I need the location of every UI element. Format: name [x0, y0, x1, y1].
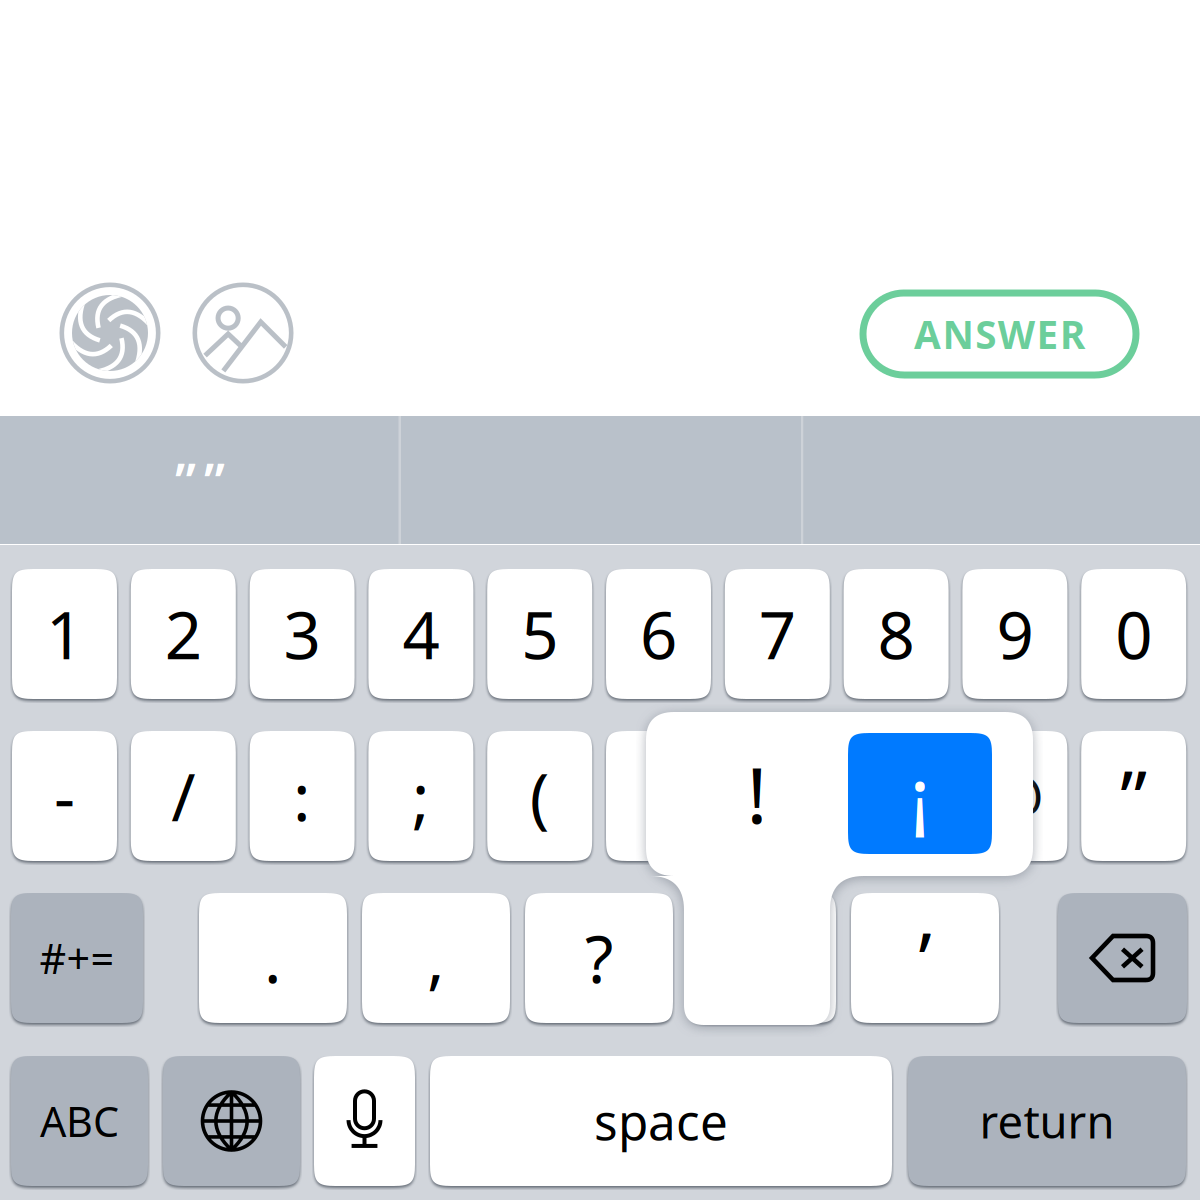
button[interactable]: 5: [487, 569, 592, 699]
button[interactable]: ’: [851, 893, 999, 1023]
staticText: ANSWER: [914, 308, 1085, 360]
staticText: #+=: [39, 931, 114, 985]
staticText: 9: [996, 591, 1033, 677]
button[interactable]: return: [908, 1056, 1186, 1186]
button[interactable]: .: [199, 893, 347, 1023]
button[interactable]: Next keyboard: [163, 1056, 300, 1186]
button[interactable]: 4: [368, 569, 473, 699]
staticText: (: [530, 753, 550, 839]
button[interactable]: ABC: [11, 1056, 148, 1186]
staticText: 8: [878, 591, 915, 677]
button[interactable]: @: [962, 731, 1067, 861]
button[interactable]: 0: [1081, 569, 1186, 699]
staticText: ¡: [909, 742, 930, 845]
button[interactable]: ”: [1081, 731, 1186, 861]
button[interactable]: Photo library: [185, 275, 301, 391]
button[interactable]: ” ”: [0, 416, 400, 544]
staticText: ,: [427, 915, 445, 1001]
button[interactable]: ?: [525, 893, 673, 1023]
button[interactable]: 8: [844, 569, 949, 699]
staticText: $: [759, 753, 796, 839]
button[interactable]: Camera: [52, 275, 168, 391]
button[interactable]: !: [685, 733, 829, 854]
staticText: ?: [585, 915, 613, 1001]
button[interactable]: 9: [962, 569, 1067, 699]
staticText: -: [54, 753, 75, 839]
staticText: 5: [521, 591, 558, 677]
staticText: :: [293, 753, 311, 839]
button[interactable]: (: [487, 731, 592, 861]
staticText: ’: [918, 908, 931, 1008]
button[interactable]: #+=: [11, 893, 143, 1023]
staticText: ;: [412, 753, 430, 839]
staticText: &: [872, 753, 920, 839]
button[interactable]: :: [250, 731, 355, 861]
staticText: ” ”: [175, 446, 225, 514]
button[interactable]: ¡: [848, 733, 992, 854]
staticText: 6: [640, 591, 677, 677]
button[interactable]: 6: [606, 569, 711, 699]
staticText: space: [594, 1088, 728, 1154]
button[interactable]: /: [131, 731, 236, 861]
staticText: 7: [759, 591, 796, 677]
button[interactable]: ;: [368, 731, 473, 861]
button[interactable]: 2: [131, 569, 236, 699]
button[interactable]: 1: [12, 569, 117, 699]
staticText: 4: [402, 591, 439, 677]
staticText: @: [985, 753, 1044, 839]
button[interactable]: !: [688, 893, 836, 1023]
staticText: /: [171, 753, 195, 839]
staticText: 0: [1115, 591, 1152, 677]
button[interactable]: Dictation: [314, 1056, 415, 1186]
button[interactable]: -: [12, 731, 117, 861]
button[interactable]: ANSWER: [863, 293, 1136, 375]
button[interactable]: ): [606, 731, 711, 861]
staticText: 1: [46, 591, 83, 677]
button[interactable]: space: [430, 1056, 892, 1186]
button[interactable]: &: [844, 731, 949, 861]
button[interactable]: 7: [725, 569, 830, 699]
button[interactable]: ,: [362, 893, 510, 1023]
staticText: return: [979, 1091, 1114, 1151]
staticText: .: [264, 915, 282, 1001]
staticText: !: [746, 742, 767, 845]
staticText: 3: [284, 591, 321, 677]
button[interactable]: 3: [250, 569, 355, 699]
button[interactable]: Delete: [1058, 893, 1187, 1023]
staticText: ABC: [40, 1094, 119, 1148]
staticText: ”: [1120, 746, 1147, 846]
staticText: 2: [165, 591, 202, 677]
button[interactable]: $: [725, 731, 830, 861]
